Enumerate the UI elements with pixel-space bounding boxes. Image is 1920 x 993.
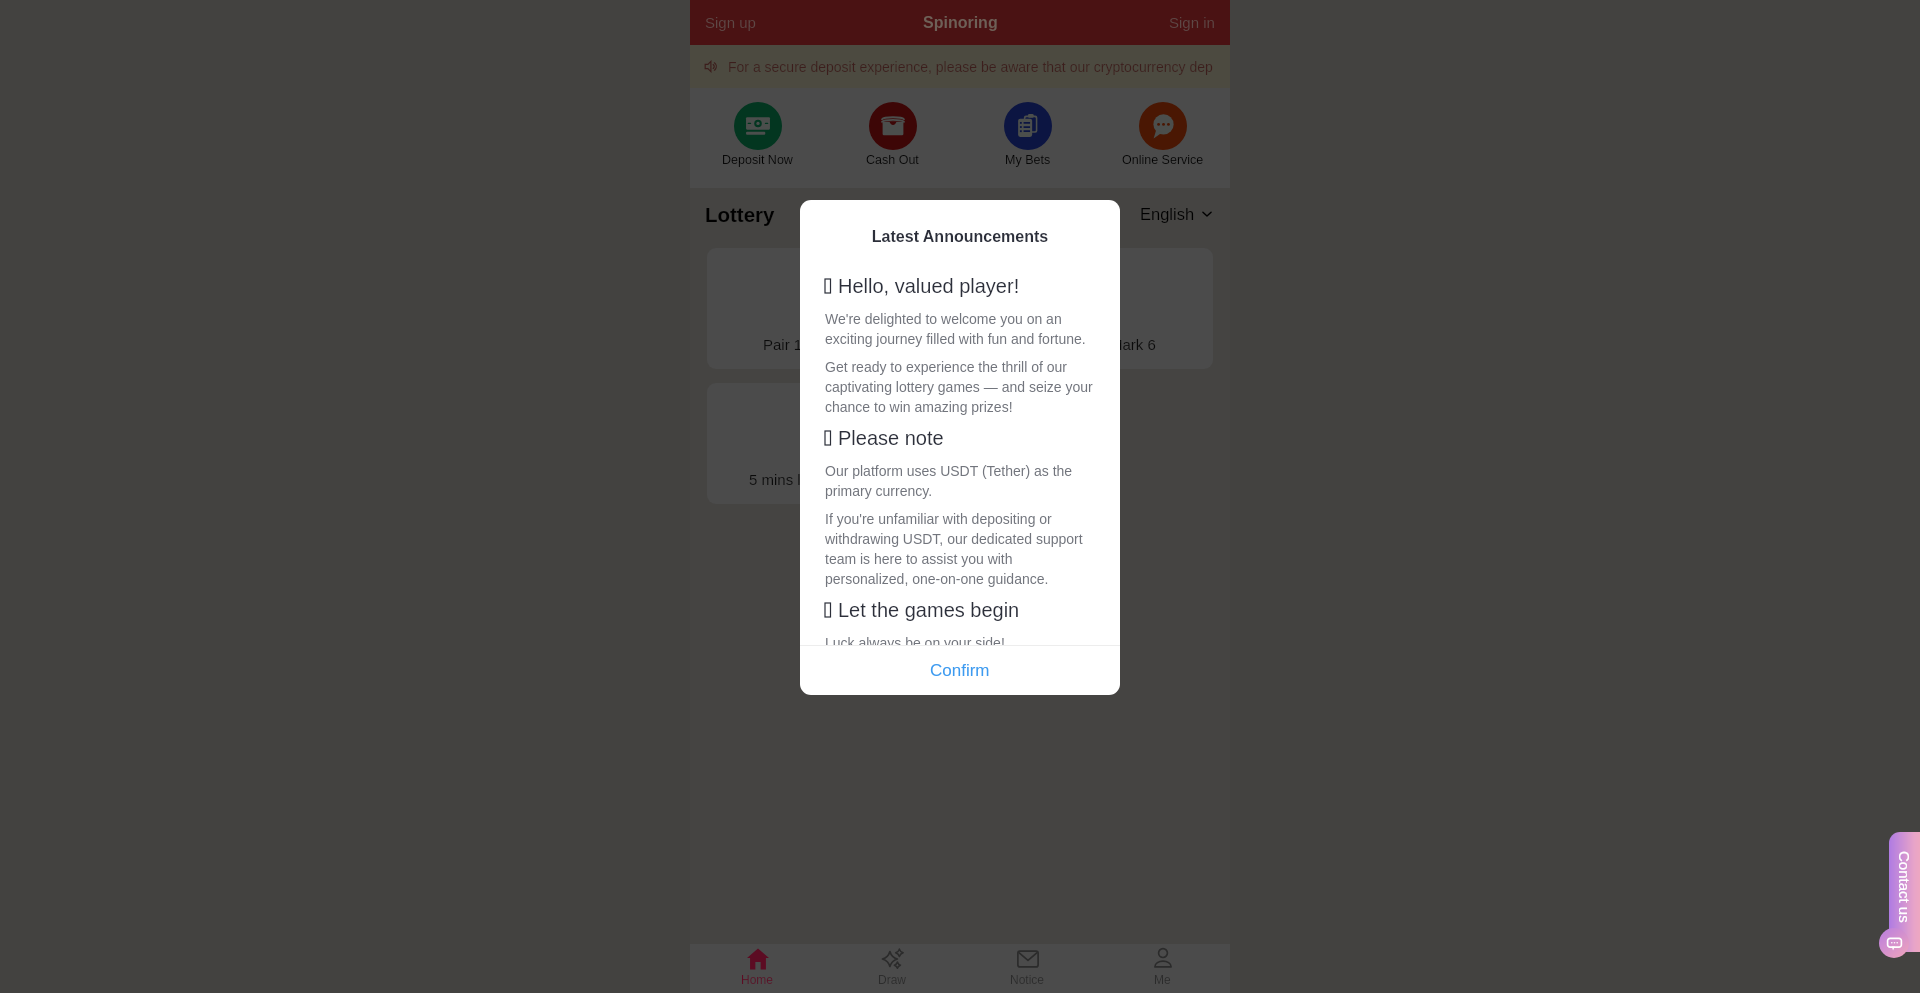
staticText: Hello, valued player! [838,275,1020,297]
button[interactable]: Sign in [1154,3,1230,42]
button[interactable]: Online Service [1095,88,1230,188]
button[interactable]: Notice [960,944,1095,993]
staticText: English [1140,205,1195,223]
button[interactable]: Draw [825,944,960,993]
staticText: Notice [1010,973,1045,986]
staticText: For a secure deposit experience, please … [728,59,1213,75]
staticText: Lottery [705,203,775,226]
button[interactable]: My Bets [960,88,1095,188]
button[interactable]: Home [690,944,825,993]
staticText: Luck always be on your side! [825,635,1005,645]
button[interactable]: Deposit Now [690,88,825,188]
staticText: Spinoring [923,14,998,32]
staticText: Mark 6 [1110,336,1156,353]
staticText: My Bets [1005,153,1051,167]
staticText: Home [741,973,774,986]
staticText: Latest Announcements [800,228,1120,246]
button[interactable]: Open chat [1879,928,1909,958]
staticText: Me [1154,973,1171,986]
button[interactable]: Contact us [1889,832,1920,952]
staticText: Sign in [1169,14,1215,31]
staticText: Please note [838,427,944,449]
button[interactable]: Me [1095,944,1230,993]
button[interactable]: Confirm [800,646,1120,695]
staticText: Online Service [1122,153,1204,167]
button[interactable]: Mark 6 [1052,248,1213,369]
staticText: We're delighted to welcome you on an exc… [825,311,1095,347]
button[interactable]: English [1140,205,1213,223]
staticText: Cash Out [866,153,919,167]
staticText: Let the games begin [838,599,1020,621]
button[interactable]: Sign up [690,3,771,42]
staticText: Confirm [930,661,990,680]
staticText: Deposit Now [722,153,793,167]
staticText: Draw [878,973,907,986]
button[interactable]: For a secure deposit experience, please … [690,45,1230,88]
button[interactable]: Cash Out [825,88,960,188]
button[interactable]: 5 mins lotto [707,383,867,504]
staticText: Lucky 5 [934,336,986,353]
staticText: Sign up [705,14,756,31]
button[interactable]: Lucky 5 [879,248,1040,369]
staticText: Our platform uses USDT (Tether) as the p… [825,463,1095,499]
button[interactable]: 1 min lottery [879,383,1040,504]
staticText: Contact us [1896,851,1913,923]
button[interactable]: Pair 10 [707,248,867,369]
staticText: Get ready to experience the thrill of ou… [825,359,1095,415]
staticText: Pair 10 [763,336,811,353]
staticText: 1 min lottery [919,471,1001,488]
staticText: 5 mins lotto [749,471,826,488]
staticText: If you're unfamiliar with depositing or … [825,511,1095,587]
